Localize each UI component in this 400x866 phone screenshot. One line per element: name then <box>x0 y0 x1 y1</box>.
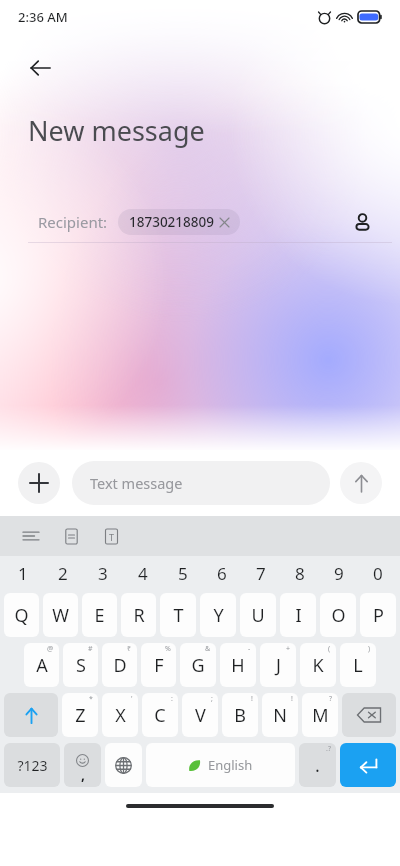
staticText: S <box>76 653 86 678</box>
staticText: H <box>231 653 245 678</box>
staticText: 8 <box>295 562 305 585</box>
staticText: K <box>312 653 324 678</box>
staticText: 3 <box>98 562 108 585</box>
button[interactable]: E <box>82 593 117 637</box>
staticText: ' <box>131 694 133 704</box>
staticText: Y <box>213 603 224 628</box>
button[interactable]: ?123 <box>4 743 60 787</box>
button[interactable]: ) <box>340 643 376 687</box>
staticText: Z <box>75 703 86 728</box>
staticText: * <box>89 694 93 704</box>
button[interactable]: Y <box>200 593 236 637</box>
staticText: 2 <box>58 562 68 585</box>
button[interactable]: 0 <box>358 556 397 590</box>
staticText: & <box>205 644 211 654</box>
button[interactable]: P <box>360 593 396 637</box>
button[interactable]: Q <box>4 593 39 637</box>
button[interactable]: ! <box>222 693 258 737</box>
button[interactable]: : <box>142 693 178 737</box>
staticText: 1 <box>18 562 28 585</box>
staticText: ! <box>291 694 293 704</box>
button[interactable]: + <box>260 643 296 687</box>
staticText: New message <box>28 112 205 149</box>
button[interactable]: W <box>43 593 78 637</box>
button[interactable]: T <box>160 593 196 637</box>
staticText: ! <box>251 694 253 704</box>
button[interactable]: ? <box>302 693 338 737</box>
button[interactable]: Send <box>340 462 382 504</box>
button[interactable]: @ <box>24 643 59 687</box>
button[interactable]: 3 <box>83 556 123 590</box>
staticText: C <box>154 703 166 728</box>
button[interactable]: Pick contact <box>344 204 380 240</box>
staticText: J <box>276 653 281 678</box>
button[interactable]: U <box>240 593 276 637</box>
button[interactable]: 8 <box>280 556 319 590</box>
staticText: 7 <box>256 562 266 585</box>
staticText: I <box>295 603 302 628</box>
button[interactable]: Enter <box>340 743 396 787</box>
button[interactable]: Back <box>18 46 62 90</box>
staticText: E <box>94 603 105 628</box>
staticText: T <box>173 603 184 628</box>
staticText: Recipient: <box>38 212 108 232</box>
staticText: @ <box>47 644 54 654</box>
staticText: , <box>81 765 85 784</box>
staticText: + <box>286 644 291 654</box>
staticText: ( <box>328 644 331 654</box>
button[interactable]: Clipboard <box>56 521 86 551</box>
staticText: Q <box>14 603 29 628</box>
staticText: 6 <box>217 562 227 585</box>
button[interactable]: English <box>146 743 295 787</box>
button[interactable]: # <box>63 643 98 687</box>
button[interactable]: .? <box>299 743 336 787</box>
staticText: % <box>165 644 171 654</box>
button[interactable]: 4 <box>123 556 163 590</box>
staticText: English <box>208 756 253 774</box>
button[interactable]: 7 <box>241 556 280 590</box>
staticText: .? <box>326 744 331 754</box>
button[interactable]: ' <box>102 693 138 737</box>
button[interactable]: Change language <box>105 743 142 787</box>
button[interactable]: ( <box>300 643 336 687</box>
staticText: 0 <box>373 562 383 585</box>
staticText: ₹ <box>127 644 132 654</box>
button[interactable]: 6 <box>202 556 241 590</box>
button[interactable]: Emoji <box>64 743 101 787</box>
button[interactable]: Add attachment <box>18 462 60 504</box>
button[interactable]: - <box>220 643 256 687</box>
button[interactable]: I <box>280 593 316 637</box>
button[interactable]: Text settings <box>96 521 126 551</box>
button[interactable]: Menu <box>16 521 46 551</box>
button[interactable]: 9 <box>319 556 358 590</box>
staticText: ? <box>329 694 333 704</box>
button[interactable]: ₹ <box>102 643 137 687</box>
staticText: V <box>195 703 206 728</box>
staticText: G <box>191 653 205 678</box>
button[interactable]: 18730218809 <box>118 209 240 235</box>
button[interactable]: R <box>121 593 156 637</box>
button[interactable]: Backspace <box>342 693 396 737</box>
staticText: . <box>315 753 320 778</box>
button[interactable]: ; <box>182 693 218 737</box>
button[interactable]: % <box>141 643 176 687</box>
staticText: N <box>273 703 287 728</box>
button[interactable]: ! <box>262 693 298 737</box>
button[interactable]: Shift <box>4 693 58 737</box>
button[interactable]: 1 <box>3 556 43 590</box>
button[interactable]: 5 <box>163 556 202 590</box>
staticText: ?123 <box>17 756 48 775</box>
staticText: L <box>353 653 363 678</box>
staticText: ) <box>368 644 371 654</box>
staticText: - <box>248 644 251 654</box>
staticText: : <box>171 694 173 704</box>
staticText: R <box>133 603 145 628</box>
button[interactable]: & <box>180 643 216 687</box>
button[interactable]: Text message <box>72 461 330 505</box>
staticText: A <box>36 653 48 678</box>
button[interactable]: O <box>320 593 356 637</box>
button[interactable]: 2 <box>43 556 83 590</box>
staticText: 9 <box>334 562 344 585</box>
button[interactable]: * <box>62 693 98 737</box>
staticText: X <box>115 703 126 728</box>
